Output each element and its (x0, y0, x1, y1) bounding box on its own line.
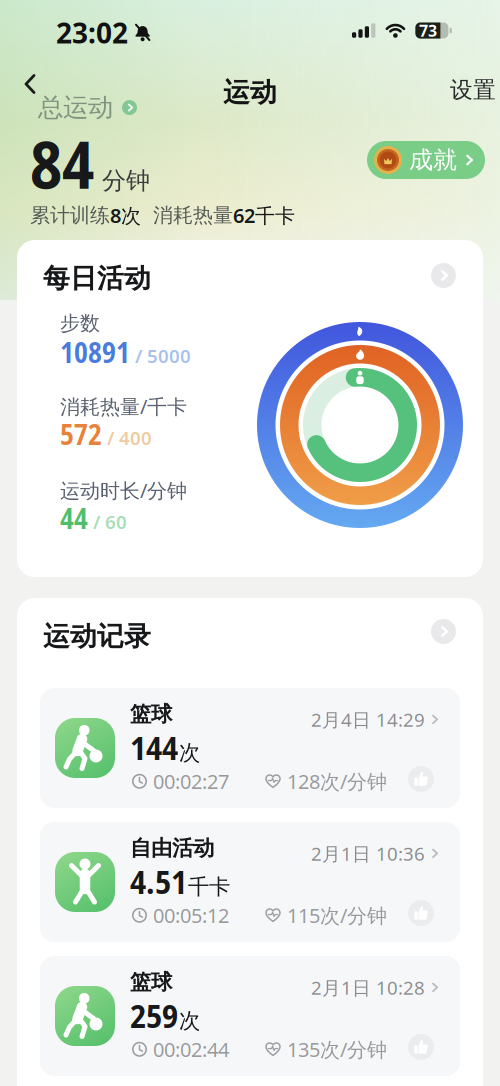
staticText: 运动时长/分钟 (60, 477, 187, 504)
staticText: 步数 (60, 311, 100, 336)
staticText: 千卡 (188, 874, 230, 900)
staticText: 2月1日 10:36 (311, 841, 425, 866)
staticText: 每日活动 (43, 262, 151, 295)
staticText: 73 (419, 20, 437, 41)
staticText: 2月1日 10:28 (311, 975, 425, 1000)
button[interactable]: 点赞 (408, 900, 434, 926)
staticText: 2月4日 14:29 (311, 707, 425, 732)
staticText: 00:02:27 (153, 768, 229, 795)
staticText: 累计训练 (30, 203, 110, 228)
staticText: 572 (60, 415, 102, 453)
button[interactable]: 点赞 (408, 1034, 434, 1060)
staticText: 运动记录 (43, 620, 151, 653)
staticText: 设置 (450, 76, 496, 104)
button[interactable]: 设置 (450, 76, 496, 104)
staticText: 篮球 (130, 701, 172, 727)
staticText: 总运动 (38, 92, 113, 123)
button[interactable]: 自由活动 (40, 822, 460, 942)
button[interactable]: 总运动 (38, 92, 137, 123)
staticText: 128次/分钟 (287, 768, 387, 795)
staticText: 44 (60, 499, 88, 537)
staticText: 运动 (223, 76, 277, 109)
staticText: 自由活动 (130, 835, 214, 861)
staticText: 次 (179, 740, 200, 766)
button[interactable]: 成就 (367, 141, 485, 179)
staticText: 00:05:12 (153, 902, 229, 929)
button[interactable]: 篮球 (40, 688, 460, 808)
button[interactable]: 查看运动记录 (431, 619, 456, 644)
button[interactable]: 返回 (24, 74, 36, 94)
staticText: / 400 (107, 425, 152, 450)
staticText: 23:02 (56, 14, 128, 51)
button[interactable]: 篮球 (40, 956, 460, 1076)
staticText: 84 (30, 119, 94, 208)
button[interactable]: 查看每日活动 (431, 263, 456, 288)
staticText: 篮球 (130, 969, 172, 995)
staticText: 135次/分钟 (287, 1036, 387, 1063)
staticText: 次 (179, 1008, 200, 1034)
staticText: 消耗热量 (141, 203, 233, 228)
button[interactable]: 点赞 (408, 766, 434, 792)
staticText: 分钟 (102, 166, 150, 196)
staticText: 62千卡 (233, 202, 295, 229)
staticText: 4.51 (130, 859, 187, 903)
staticText: 144 (130, 725, 178, 769)
staticText: 259 (130, 993, 178, 1037)
staticText: / 5000 (135, 343, 191, 368)
staticText: 10891 (60, 333, 130, 371)
staticText: 成就 (409, 145, 457, 175)
staticText: 115次/分钟 (287, 902, 387, 929)
staticText: 00:02:44 (153, 1036, 229, 1063)
staticText: 8次 (110, 202, 141, 229)
staticText: 消耗热量/千卡 (60, 393, 187, 420)
staticText: / 60 (93, 509, 127, 534)
